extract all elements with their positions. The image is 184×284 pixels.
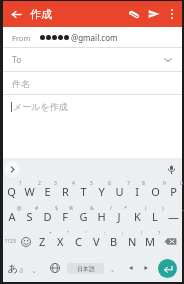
button[interactable]: メールを作成 xyxy=(3,95,182,158)
staticText: 1 xyxy=(19,180,22,187)
button[interactable]: 。 xyxy=(106,254,123,282)
button[interactable]: Expand toolbar xyxy=(4,161,20,177)
button[interactable]: 日本語 xyxy=(64,254,106,282)
button[interactable]: J xyxy=(110,204,128,229)
button[interactable]: Y xyxy=(92,179,110,204)
staticText: ; xyxy=(122,230,124,237)
button[interactable]: S xyxy=(20,204,38,229)
staticText: % xyxy=(69,205,74,212)
button[interactable]: U xyxy=(110,179,128,204)
staticText: 、 xyxy=(32,263,41,274)
button[interactable]: L xyxy=(146,204,164,229)
staticText: To xyxy=(12,54,22,66)
staticText: & xyxy=(90,205,94,212)
staticText: # xyxy=(35,205,39,212)
button[interactable]: Enter xyxy=(153,254,182,282)
button[interactable]: F xyxy=(56,204,74,229)
staticText: L xyxy=(152,209,158,224)
staticText: 作成 xyxy=(30,7,52,21)
staticText: From xyxy=(12,33,31,43)
staticText: * xyxy=(124,205,127,212)
staticText: R xyxy=(62,184,69,199)
staticText: U xyxy=(115,184,124,199)
button[interactable]: Switch input mode xyxy=(3,254,28,282)
staticText: A xyxy=(8,209,16,224)
button[interactable]: Attach file xyxy=(124,4,144,24)
staticText: J xyxy=(117,209,121,224)
button[interactable]: Back xyxy=(7,5,25,23)
staticText: E xyxy=(44,184,51,199)
button[interactable]: Emoji xyxy=(18,229,33,254)
button[interactable]: More options xyxy=(164,6,180,22)
staticText: M xyxy=(145,234,155,249)
staticText: H xyxy=(97,209,106,224)
staticText: メールを作成 xyxy=(13,101,68,112)
button[interactable]: R xyxy=(56,179,74,204)
button[interactable]: Symbols xyxy=(3,229,18,254)
staticText: Q xyxy=(7,184,16,199)
staticText: X xyxy=(57,234,64,249)
staticText: K xyxy=(134,209,141,224)
button[interactable]: V xyxy=(87,229,105,254)
staticText: 5 xyxy=(90,180,93,187)
button[interactable]: From xyxy=(3,27,182,48)
button[interactable]: Backspace xyxy=(159,229,182,254)
button[interactable]: C xyxy=(69,229,87,254)
button[interactable]: E xyxy=(38,179,56,204)
button[interactable]: Z xyxy=(33,229,51,254)
button[interactable]: W xyxy=(20,179,38,204)
staticText: 7 xyxy=(127,180,130,187)
staticText: a xyxy=(19,264,24,275)
staticText: B xyxy=(110,234,118,249)
button[interactable]: K xyxy=(128,204,146,229)
staticText: 。 xyxy=(111,264,118,273)
staticText: あ xyxy=(8,262,19,275)
staticText: 4 xyxy=(72,180,75,187)
button[interactable]: Send xyxy=(144,4,164,24)
staticText: 件名 xyxy=(12,78,30,89)
button[interactable]: B xyxy=(105,229,123,254)
button[interactable]: I xyxy=(128,179,146,204)
button[interactable]: To xyxy=(3,48,182,72)
button[interactable]: Move cursor right xyxy=(138,254,153,282)
button[interactable]: H xyxy=(92,204,110,229)
staticText: / xyxy=(110,205,112,212)
button[interactable]: 、 xyxy=(28,254,45,282)
button[interactable]: X xyxy=(51,229,69,254)
button[interactable]: N xyxy=(123,229,141,254)
button[interactable]: — xyxy=(164,204,182,229)
staticText: N xyxy=(128,234,137,249)
staticText: + xyxy=(49,230,52,237)
staticText: $ xyxy=(55,205,58,212)
staticText: Y xyxy=(98,184,105,199)
staticText: I xyxy=(135,184,139,199)
button[interactable]: A xyxy=(3,204,20,229)
button[interactable]: Move cursor left xyxy=(123,254,138,282)
staticText: _ xyxy=(182,205,184,212)
staticText: G xyxy=(79,209,88,224)
button[interactable]: Q xyxy=(3,179,20,204)
staticText: @gmail.com xyxy=(71,32,118,43)
button[interactable]: T xyxy=(74,179,92,204)
button[interactable]: O xyxy=(146,179,164,204)
staticText: C xyxy=(75,234,82,249)
button[interactable]: Voice input xyxy=(163,161,179,177)
staticText: 8 xyxy=(142,180,145,187)
button[interactable]: 件名 xyxy=(3,72,182,95)
button[interactable]: Change language xyxy=(45,254,64,282)
staticText: D xyxy=(43,209,52,224)
staticText: " xyxy=(67,230,70,237)
staticText: ! xyxy=(141,230,143,237)
staticText: W xyxy=(24,184,35,199)
staticText: 0 xyxy=(180,180,183,187)
staticText: 9 xyxy=(163,180,166,187)
staticText: ( xyxy=(145,205,147,212)
staticText: Z xyxy=(39,234,46,249)
button[interactable]: M xyxy=(141,229,159,254)
button[interactable]: G xyxy=(74,204,92,229)
button[interactable]: P xyxy=(164,179,182,204)
staticText: ?123 xyxy=(5,238,16,245)
button[interactable]: D xyxy=(38,204,56,229)
staticText: O xyxy=(151,184,160,199)
staticText: V xyxy=(93,234,100,249)
